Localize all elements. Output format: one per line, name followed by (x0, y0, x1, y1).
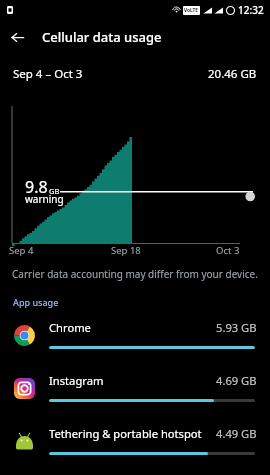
button[interactable]: App usage (8, 293, 64, 311)
button[interactable]: Back (0, 20, 34, 54)
staticText: warning (25, 192, 64, 206)
staticText: VoLTE (184, 7, 199, 14)
staticText: Tethering & portable hotspot (49, 426, 202, 441)
staticText: 20.46 GB (208, 66, 257, 82)
staticText: 12:32 (238, 3, 264, 17)
button[interactable]: Chrome (0, 309, 270, 362)
staticText: Sep 4 (9, 244, 34, 257)
staticText: 4.69 GB (216, 373, 257, 388)
staticText: Carrier data accounting may differ from … (12, 267, 258, 281)
staticText: GB (49, 186, 60, 196)
staticText: 4.49 GB (216, 426, 257, 441)
staticText: Oct 3 (216, 244, 240, 257)
staticText: Cellular data usage (42, 28, 162, 46)
button[interactable]: Tethering & portable hotspot (0, 415, 270, 468)
staticText: 9.8 (25, 176, 48, 198)
staticText: 5.93 GB (216, 320, 257, 335)
staticText: Chrome (49, 320, 91, 335)
staticText: Sep 4 – Oct 3 (13, 66, 83, 82)
staticText: Sep 18 (111, 244, 141, 257)
staticText: App usage (13, 296, 59, 308)
button[interactable]: Instagram (0, 362, 270, 415)
staticText: Instagram (49, 373, 104, 388)
